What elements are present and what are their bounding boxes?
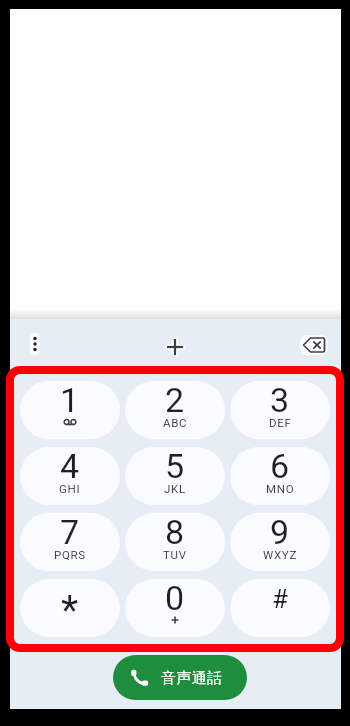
staticText: 7 xyxy=(60,513,80,549)
staticText: DEF xyxy=(269,416,292,429)
staticText: TUV xyxy=(163,548,187,561)
staticText: 音声通話 xyxy=(161,669,223,688)
staticText: PQRS xyxy=(54,548,86,561)
staticText: ABC xyxy=(163,416,188,429)
staticText: 8 xyxy=(165,513,185,549)
button[interactable] xyxy=(159,331,191,363)
staticText: WXYZ xyxy=(263,548,298,561)
button[interactable]: 3 xyxy=(230,381,330,439)
button[interactable]: # xyxy=(230,579,330,637)
staticText: 1 xyxy=(60,381,80,417)
staticText: 9 xyxy=(270,513,290,549)
staticText: 6 xyxy=(270,447,290,483)
button[interactable] xyxy=(19,328,51,360)
staticText: 2 xyxy=(165,381,185,417)
button[interactable]: 5 xyxy=(125,447,225,505)
staticText: MNO xyxy=(266,482,295,495)
staticText: 5 xyxy=(165,447,185,483)
staticText: JKL xyxy=(164,482,186,495)
button[interactable]: * xyxy=(20,579,120,637)
button[interactable]: 2 xyxy=(125,381,225,439)
button[interactable]: 4 xyxy=(20,447,120,505)
button[interactable]: 9 xyxy=(230,513,330,571)
staticText: # xyxy=(272,584,289,614)
staticText: * xyxy=(61,587,79,624)
staticText: 4 xyxy=(60,447,80,483)
button[interactable]: 8 xyxy=(125,513,225,571)
button[interactable]: 1 xyxy=(20,381,120,439)
button[interactable]: 7 xyxy=(20,513,120,571)
button[interactable]: 0 xyxy=(125,579,225,637)
staticText: 3 xyxy=(270,381,290,417)
staticText: GHI xyxy=(59,482,81,495)
button[interactable] xyxy=(296,329,332,361)
button[interactable]: 音声通話 xyxy=(113,655,247,700)
staticText: 0 xyxy=(165,579,185,615)
button[interactable]: 6 xyxy=(230,447,330,505)
